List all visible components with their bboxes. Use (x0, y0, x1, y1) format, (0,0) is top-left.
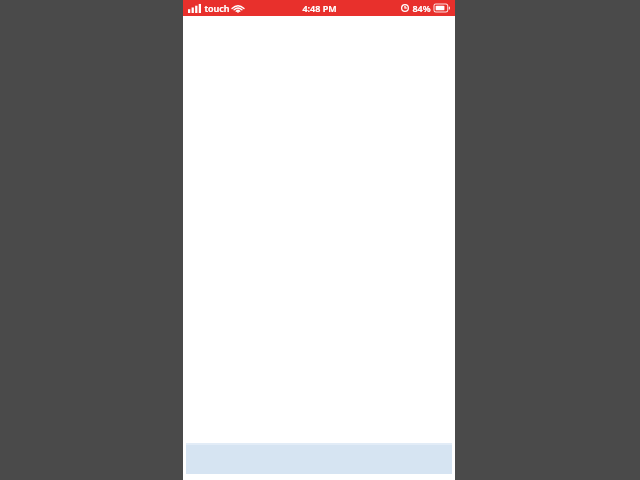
button[interactable]: Battery 84 percent (401, 2, 450, 14)
staticText: 4:48 PM (302, 2, 337, 14)
staticText: touch (204, 2, 230, 14)
button[interactable]: Carrier and signal strength (188, 2, 243, 14)
button[interactable]: 4:48 PM (302, 2, 337, 14)
staticText: 84% (412, 2, 431, 14)
